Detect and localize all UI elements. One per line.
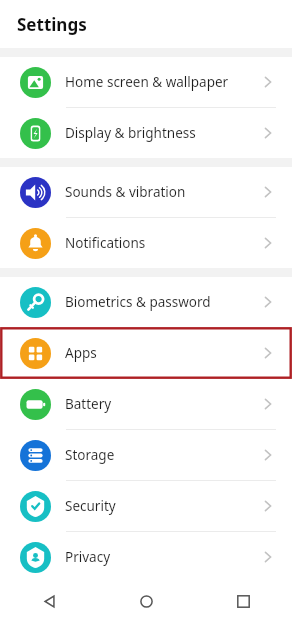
staticText: Battery xyxy=(65,395,112,413)
button[interactable]: Biometrics & password xyxy=(0,277,292,327)
button[interactable]: Battery xyxy=(0,379,292,429)
staticText: Security xyxy=(65,497,116,515)
button[interactable]: Home xyxy=(98,584,195,618)
staticText: Storage xyxy=(65,446,115,464)
staticText: Privacy xyxy=(65,548,111,566)
staticText: Sounds & vibration xyxy=(65,183,186,201)
button[interactable]: Privacy xyxy=(0,532,292,582)
button[interactable]: Security xyxy=(0,481,292,531)
button[interactable]: Apps xyxy=(0,327,292,379)
staticText: Display & brightness xyxy=(65,124,196,142)
button[interactable]: Security xyxy=(0,481,292,531)
staticText: Notifications xyxy=(65,234,146,252)
button[interactable]: Recent apps xyxy=(195,584,292,618)
button[interactable]: Back xyxy=(0,584,98,618)
button[interactable]: Home screen & wallpaper xyxy=(0,57,292,107)
button[interactable]: Biometrics & password xyxy=(0,277,292,327)
staticText: Home screen & wallpaper xyxy=(65,73,229,91)
button[interactable]: Privacy xyxy=(0,532,292,582)
button[interactable]: Storage xyxy=(0,430,292,480)
button[interactable]: Sounds & vibration xyxy=(0,167,292,217)
staticText: Apps xyxy=(65,344,97,362)
button[interactable]: Sounds & vibration xyxy=(0,167,292,217)
staticText: Biometrics & password xyxy=(65,293,211,311)
button[interactable]: Display & brightness xyxy=(0,108,292,158)
button[interactable]: Home screen & wallpaper xyxy=(0,57,292,107)
button[interactable]: Storage xyxy=(0,430,292,480)
button[interactable]: Display & brightness xyxy=(0,108,292,158)
button[interactable]: Notifications xyxy=(0,218,292,268)
button[interactable]: Notifications xyxy=(0,218,292,268)
button[interactable]: Battery xyxy=(0,379,292,429)
staticText: Settings xyxy=(17,13,87,36)
